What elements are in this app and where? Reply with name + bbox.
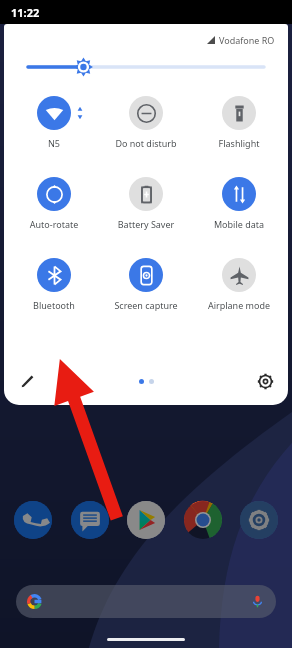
button[interactable]: Bluetooth <box>11 256 97 313</box>
button[interactable]: Brightness <box>28 56 264 78</box>
button[interactable]: Do not disturb <box>103 94 189 151</box>
staticText: Auto-rotate <box>11 218 97 230</box>
button[interactable]: Settings <box>240 501 278 539</box>
button[interactable]: Messages <box>71 501 109 539</box>
button[interactable]: Phone <box>14 501 52 539</box>
staticText: Battery Saver <box>103 218 189 230</box>
staticText: Screen capture <box>103 299 189 311</box>
staticText: Airplane mode <box>196 299 282 311</box>
staticText: N5 <box>11 137 97 149</box>
button[interactable]: Play Store <box>127 501 165 539</box>
button[interactable]: Airplane mode <box>196 256 282 313</box>
staticText: Mobile data <box>196 218 282 230</box>
staticText: 11:22 <box>11 5 40 20</box>
button[interactable]: Mobile data <box>196 175 282 232</box>
staticText: Bluetooth <box>11 299 97 311</box>
staticText: Flashlight <box>196 137 282 149</box>
button[interactable]: Screen capture <box>103 256 189 313</box>
button[interactable]: Auto-rotate <box>11 175 97 232</box>
button[interactable]: Flashlight <box>196 94 282 151</box>
button[interactable]: Battery Saver <box>103 175 189 232</box>
button[interactable]: N5 <box>11 94 97 151</box>
button[interactable]: Search <box>16 585 276 618</box>
button[interactable]: Settings <box>252 368 278 394</box>
staticText: Vodafone RO <box>219 34 275 46</box>
button[interactable]: Edit <box>14 368 40 394</box>
staticText: Do not disturb <box>103 137 189 149</box>
button[interactable]: Chrome <box>184 501 222 539</box>
